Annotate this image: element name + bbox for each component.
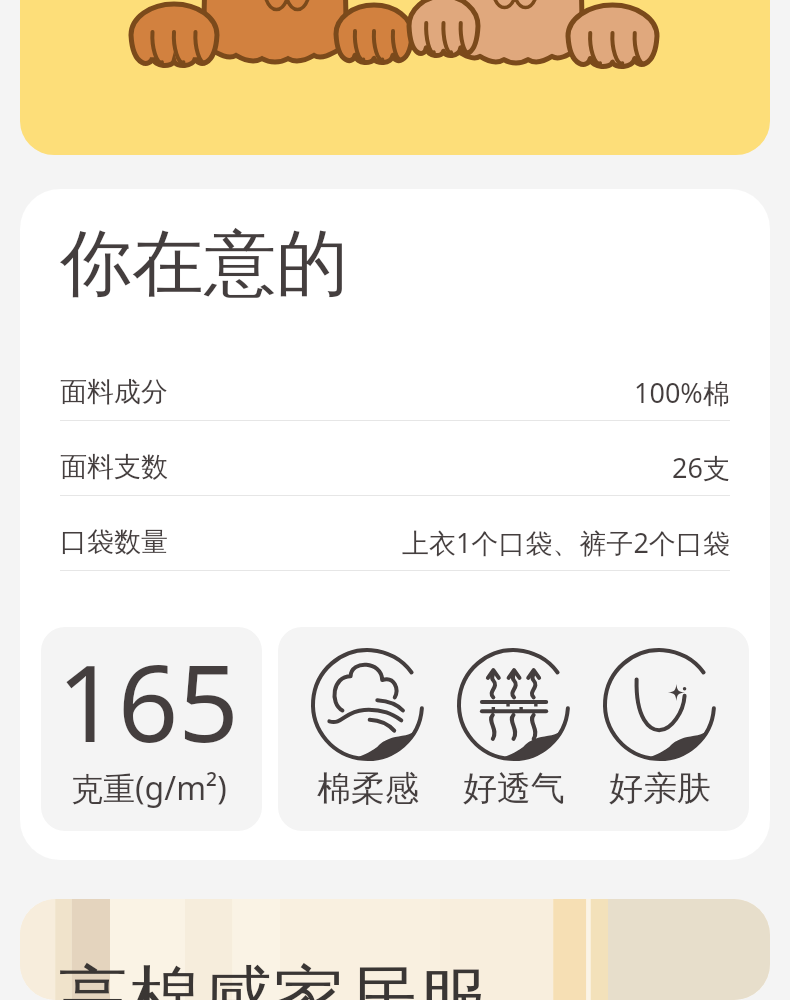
staticText: 100%棉 (634, 374, 730, 411)
button[interactable]: 好亲肤 (603, 648, 716, 810)
staticText: 面料支数 (60, 450, 168, 484)
staticText: 面料成分 (60, 375, 168, 409)
button[interactable]: 好透气 (457, 648, 570, 810)
staticText: 口袋数量 (60, 525, 168, 559)
button[interactable]: 高棉感家居服 (20, 899, 770, 1000)
staticText: 棉柔感 (317, 767, 419, 810)
button[interactable]: 口袋数量 (20, 496, 770, 571)
staticText: 克重(g/m²) (71, 766, 227, 810)
staticText: 上衣1个口袋、裤子2个口袋 (402, 524, 730, 561)
button[interactable]: 165 (41, 627, 262, 831)
staticText: 好亲肤 (609, 767, 711, 810)
button[interactable]: 面料支数 (20, 421, 770, 496)
staticText: 你在意的 (60, 219, 348, 310)
button[interactable]: 面料成分 (20, 346, 770, 421)
staticText: 26支 (672, 449, 730, 486)
staticText: 高棉感家居服 (57, 955, 489, 1000)
staticText: 好透气 (463, 767, 565, 810)
button[interactable]: 棉柔感 (311, 648, 424, 810)
staticText: 165 (57, 629, 239, 773)
